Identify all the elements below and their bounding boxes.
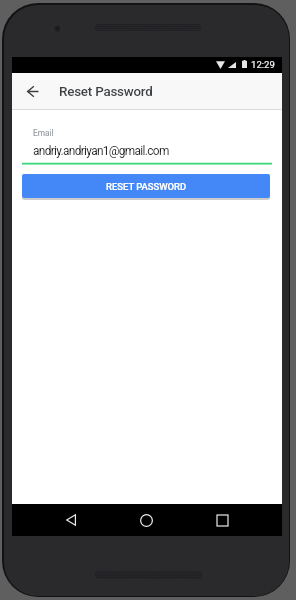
button[interactable]: Navigate up (21, 79, 45, 103)
button[interactable]: Home (130, 504, 162, 536)
button[interactable]: RESET PASSWORD (22, 174, 270, 198)
staticText: RESET PASSWORD (106, 181, 187, 192)
staticText: Email (33, 128, 54, 138)
staticText: Reset Password (59, 84, 153, 100)
button[interactable]: Recent apps (206, 504, 238, 536)
staticText: 12:29 (251, 59, 275, 70)
button[interactable]: Back (55, 504, 87, 536)
staticText: andriy.andriyan1@gmail.com (33, 144, 169, 158)
